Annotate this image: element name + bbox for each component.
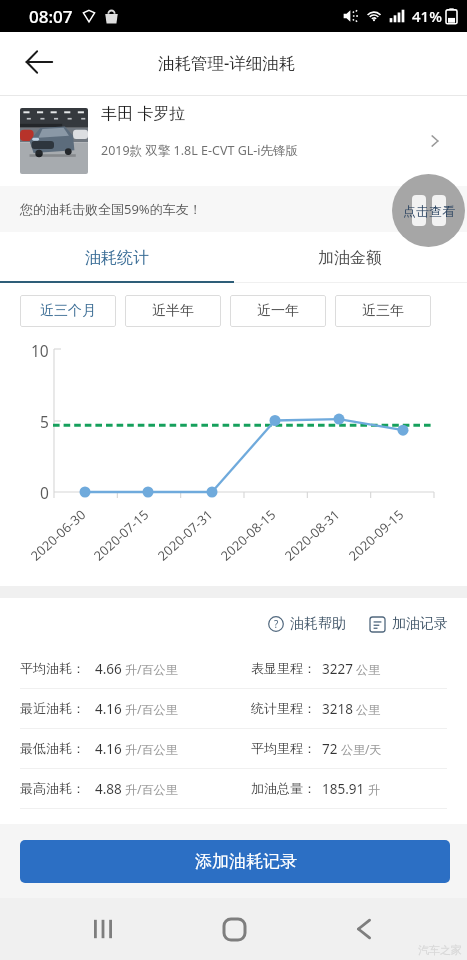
staticText: 油耗帮助 <box>290 615 346 633</box>
staticText: 升/百公里 <box>125 661 178 677</box>
staticText: 10 <box>31 340 49 361</box>
staticText: 41% <box>412 6 442 26</box>
staticText: 72 <box>322 740 338 758</box>
button[interactable]: 加油金额 <box>233 232 467 283</box>
staticText: 最高油耗： <box>20 780 85 796</box>
button[interactable]: Home <box>206 901 262 957</box>
staticText: 统计里程： <box>251 700 316 716</box>
staticText: 最低油耗： <box>20 740 85 756</box>
staticText: 点击查看 <box>403 203 455 219</box>
staticText: 2020-07-31 <box>154 506 216 564</box>
staticText: 4.66 <box>95 660 122 678</box>
staticText: 2020-08-31 <box>281 506 343 564</box>
staticText: 近三年 <box>362 302 404 320</box>
button[interactable]: 近半年 <box>125 295 221 327</box>
button[interactable]: 近三个月 <box>20 295 116 327</box>
button[interactable]: 近一年 <box>230 295 326 327</box>
staticText: 油耗管理-详细油耗 <box>158 51 296 74</box>
staticText: 近一年 <box>257 302 299 320</box>
staticText: 近三个月 <box>40 302 96 320</box>
button[interactable]: 丰田 卡罗拉 <box>0 96 467 186</box>
button[interactable]: 加油记录 <box>370 609 448 639</box>
staticText: 4.16 <box>95 740 122 758</box>
staticText: 2020-06-30 <box>27 506 89 564</box>
staticText: 近半年 <box>152 302 194 320</box>
staticText: 3227 <box>322 660 353 678</box>
staticText: 升/百公里 <box>125 781 178 797</box>
staticText: 公里/天 <box>341 741 382 757</box>
staticText: 最近油耗： <box>20 700 85 716</box>
button[interactable]: 点击查看 <box>392 174 465 247</box>
staticText: 185.91 <box>322 780 365 798</box>
staticText: 表显里程： <box>251 660 316 676</box>
staticText: 您的油耗击败全国59%的车友！ <box>20 200 202 218</box>
staticText: 添加油耗记录 <box>195 851 297 872</box>
staticText: 5 <box>40 411 49 432</box>
staticText: 加油金额 <box>318 248 382 268</box>
button[interactable]: 添加油耗记录 <box>20 840 450 883</box>
button[interactable]: Back <box>16 39 62 85</box>
button[interactable]: 油耗统计 <box>0 232 233 283</box>
staticText: 加油记录 <box>392 615 448 633</box>
button[interactable]: 近三年 <box>335 295 431 327</box>
staticText: 油耗统计 <box>85 248 149 268</box>
staticText: 2019款 双擎 1.8L E-CVT GL-i先锋版 <box>101 142 299 159</box>
button[interactable]: ? <box>268 609 346 639</box>
staticText: 2020-07-15 <box>90 506 152 564</box>
staticText: 2020-08-15 <box>217 506 279 564</box>
staticText: 4.88 <box>95 780 122 798</box>
button[interactable]: Recents <box>75 901 131 957</box>
staticText: 平均油耗： <box>20 660 85 676</box>
staticText: 公里 <box>356 662 380 677</box>
staticText: 0 <box>40 482 49 503</box>
staticText: 升/百公里 <box>125 741 178 757</box>
staticText: 升/百公里 <box>125 701 178 717</box>
staticText: 2020-09-15 <box>345 506 407 564</box>
staticText: 汽车之家 <box>418 943 462 957</box>
staticText: ? <box>274 617 279 631</box>
staticText: 加油总量： <box>251 780 316 796</box>
staticText: 4.16 <box>95 700 122 718</box>
staticText: 平均里程： <box>251 740 316 756</box>
staticText: 丰田 卡罗拉 <box>101 102 186 124</box>
staticText: 升 <box>368 782 380 797</box>
staticText: 3218 <box>322 700 353 718</box>
staticText: 08:07 <box>29 5 73 28</box>
staticText: 公里 <box>356 702 380 717</box>
button[interactable]: Back <box>336 901 392 957</box>
